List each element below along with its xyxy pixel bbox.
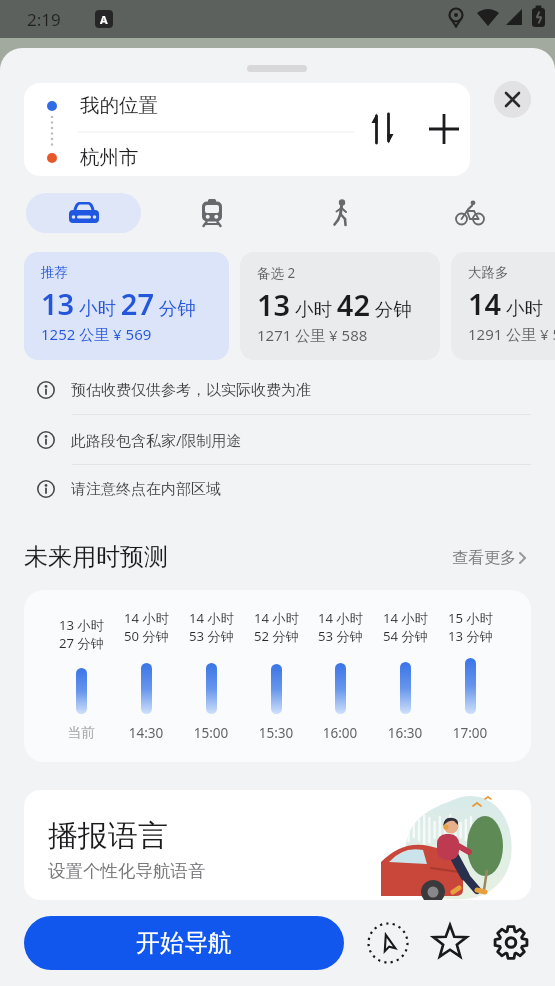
staticText: 14 小时 (468, 284, 543, 323)
staticText: 推荐 (41, 264, 68, 281)
staticText: 15:00 (179, 724, 243, 742)
button[interactable]: 备选 2 (240, 252, 440, 360)
staticText: 14 小时 (254, 609, 299, 627)
button[interactable] (26, 193, 141, 233)
staticText: 当前 (49, 724, 113, 741)
button[interactable]: 查看更多 (452, 548, 530, 568)
button[interactable]: 播报语言 (24, 790, 531, 900)
button[interactable] (489, 921, 533, 965)
staticText: 大路多 (468, 264, 509, 281)
staticText: 查看更多 (452, 548, 516, 568)
staticText: 13 小时 42 分钟 (257, 285, 412, 324)
staticText: 我的位置 (80, 93, 158, 118)
staticText: 50 分钟 (124, 627, 169, 645)
staticText: 此路段包含私家/限制用途 (71, 430, 242, 450)
staticText: 52 分钟 (254, 627, 299, 645)
button[interactable]: 开始导航 (24, 916, 344, 970)
staticText: 16:00 (308, 724, 372, 742)
staticText: 14 小时 (124, 609, 169, 627)
button[interactable] (450, 193, 490, 233)
staticText: 15:30 (244, 724, 308, 742)
staticText: 14 小时 (189, 609, 234, 627)
staticText: 54 分钟 (383, 627, 428, 645)
staticText: 杭州市 (80, 145, 139, 170)
button[interactable] (494, 81, 531, 118)
button[interactable] (366, 921, 410, 965)
staticText: 14 小时 (318, 609, 363, 627)
staticText: 1271 公里 ¥ 588 (257, 325, 368, 345)
staticText: 2:19 (27, 8, 61, 31)
staticText: 17:00 (438, 724, 502, 742)
button[interactable]: 推荐 (24, 252, 229, 360)
button[interactable]: 请注意终点在内部区域 (24, 472, 531, 506)
staticText: 1291 公里 ¥ 5 (468, 324, 555, 344)
staticText: 备选 2 (257, 264, 296, 282)
staticText: 13 小时 27 分钟 (41, 284, 196, 323)
staticText: 播报语言 (48, 817, 168, 855)
staticText: 53 分钟 (189, 627, 234, 645)
staticText: 14:30 (114, 724, 178, 742)
staticText: 未来用时预测 (24, 542, 168, 572)
staticText: 13 分钟 (448, 627, 493, 645)
staticText: 14 小时 (383, 609, 428, 627)
staticText: 15 小时 (448, 609, 493, 627)
button[interactable]: 大路多 (451, 252, 555, 360)
button[interactable] (321, 193, 361, 233)
staticText: 27 分钟 (59, 634, 104, 652)
button[interactable] (428, 921, 472, 965)
staticText: 开始导航 (136, 928, 232, 958)
staticText: 预估收费仅供参考，以实际收费为准 (71, 381, 311, 400)
button[interactable]: 此路段包含私家/限制用途 (24, 423, 531, 457)
staticText: A (100, 12, 108, 27)
staticText: 13 小时 (59, 616, 104, 634)
staticText: 设置个性化导航语音 (48, 860, 206, 882)
button[interactable]: 预估收费仅供参考，以实际收费为准 (24, 373, 531, 407)
button[interactable] (192, 193, 232, 233)
staticText: 53 分钟 (318, 627, 363, 645)
staticText: 请注意终点在内部区域 (71, 480, 221, 499)
staticText: 1252 公里 ¥ 569 (41, 324, 152, 344)
button[interactable]: 我的位置 (24, 83, 470, 176)
staticText: 16:30 (373, 724, 437, 742)
